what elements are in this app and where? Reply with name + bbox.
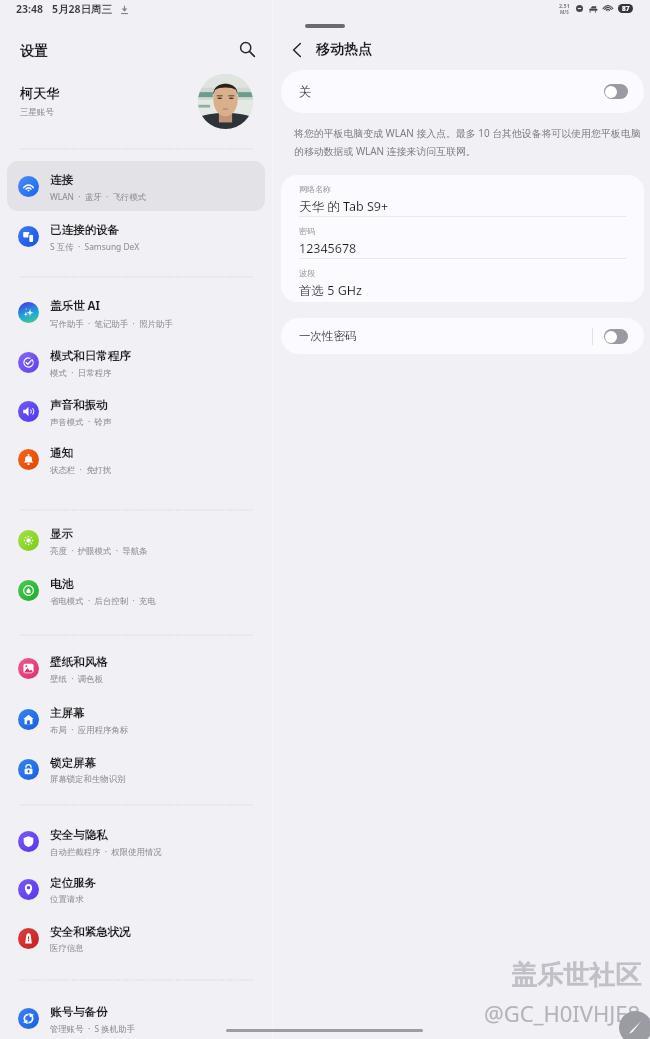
button[interactable]: 通知 xyxy=(7,434,265,484)
staticText: 将您的平板电脑变成 WLAN 接入点。最多 10 台其他设备将可以使用您平板电脑… xyxy=(294,126,641,158)
staticText: 5月28日周三 xyxy=(52,2,113,16)
staticText: 自动拦截程序 · 权限使用情况 xyxy=(50,846,162,857)
button[interactable]: 网络名称 xyxy=(281,175,644,217)
staticText: 87 xyxy=(622,4,630,13)
staticText: 密码 xyxy=(299,226,315,236)
button[interactable]: 安全和紧急状况 xyxy=(7,913,265,963)
button[interactable]: 显示 xyxy=(7,515,265,565)
staticText: 电池 xyxy=(50,577,73,591)
staticText: 23:48 xyxy=(16,2,43,16)
staticText: WLAN · 蓝牙 · 飞行模式 xyxy=(50,191,147,202)
button[interactable]: 声音和振动 xyxy=(7,386,265,436)
staticText: 天华 的 Tab S9+ xyxy=(299,198,389,215)
staticText: 模式和日常程序 xyxy=(50,349,131,363)
button[interactable]: 电池 xyxy=(7,565,265,615)
staticText: 一次性密码 xyxy=(299,329,357,343)
button[interactable]: 一次性密码 xyxy=(281,318,644,354)
staticText: 关 xyxy=(299,84,312,100)
staticText: @GC_H0IVHJE8 xyxy=(484,998,641,1028)
button[interactable]: 盖乐世 AI xyxy=(7,287,265,337)
button[interactable]: Search xyxy=(231,33,264,66)
button[interactable]: 账号与备份 xyxy=(7,993,265,1039)
staticText: 网络名称 xyxy=(299,184,331,194)
staticText: 通知 xyxy=(50,446,73,460)
staticText: 壁纸和风格 xyxy=(50,655,108,669)
button[interactable]: Toggle xyxy=(604,329,628,344)
staticText: 波段 xyxy=(299,268,315,278)
staticText: 布局 · 应用程序角标 xyxy=(50,724,129,735)
staticText: 账号与备份 xyxy=(50,1005,108,1019)
staticText: 安全与隐私 xyxy=(50,828,108,842)
staticText: 位置请求 xyxy=(50,894,84,905)
button[interactable]: Edit xyxy=(619,1011,650,1039)
staticText: S 互传 · Samsung DeX xyxy=(50,241,140,252)
staticText: 显示 xyxy=(50,527,73,541)
staticText: 三星账号 xyxy=(20,107,54,118)
staticText: 定位服务 xyxy=(50,876,96,890)
button[interactable]: 主屏幕 xyxy=(7,694,265,744)
button[interactable]: 柯天华 xyxy=(20,71,253,132)
staticText: 盖乐世社区 xyxy=(511,959,641,992)
staticText: 安全和紧急状况 xyxy=(50,925,131,939)
staticText: 首选 5 GHz xyxy=(299,282,362,299)
button[interactable]: 模式和日常程序 xyxy=(7,337,265,387)
button[interactable]: 密码 xyxy=(281,217,644,259)
staticText: 医疗信息 xyxy=(50,943,84,954)
staticText: M/S xyxy=(560,9,569,15)
button[interactable]: 设置 xyxy=(20,43,48,61)
staticText: 声音和振动 xyxy=(50,398,108,412)
staticText: 壁纸 · 调色板 xyxy=(50,673,103,684)
staticText: 锁定屏幕 xyxy=(50,756,96,770)
staticText: 声音模式 · 铃声 xyxy=(50,416,112,427)
button[interactable]: 连接 xyxy=(7,161,265,211)
staticText: 模式 · 日常程序 xyxy=(50,367,112,378)
staticText: 连接 xyxy=(50,173,73,187)
staticText: 设置 xyxy=(20,43,48,61)
staticText: 屏幕锁定和生物识别 xyxy=(50,774,126,785)
button[interactable]: Toggle xyxy=(604,84,628,99)
button[interactable]: 波段 xyxy=(281,259,644,301)
staticText: 状态栏 · 免打扰 xyxy=(50,464,112,475)
staticText: 2.51 xyxy=(559,2,570,9)
button[interactable]: 已连接的设备 xyxy=(7,211,265,261)
staticText: 亮度 · 护眼模式 · 导航条 xyxy=(50,545,148,556)
staticText: 柯天华 xyxy=(20,85,59,101)
staticText: 主屏幕 xyxy=(50,706,85,720)
button[interactable]: 锁定屏幕 xyxy=(7,744,265,794)
staticText: 移动热点 xyxy=(316,41,372,59)
staticText: 已连接的设备 xyxy=(50,223,119,237)
staticText: 省电模式 · 后台控制 · 充电 xyxy=(50,595,156,606)
staticText: 管理账号 · S 换机助手 xyxy=(50,1023,135,1034)
button[interactable]: 关 xyxy=(281,70,644,113)
staticText: 12345678 xyxy=(299,240,357,257)
button[interactable]: 定位服务 xyxy=(7,864,265,914)
button[interactable]: 壁纸和风格 xyxy=(7,643,265,693)
staticText: 写作助手 · 笔记助手 · 照片助手 xyxy=(50,318,173,329)
button[interactable]: 安全与隐私 xyxy=(7,816,265,866)
button[interactable]: Back xyxy=(282,35,312,65)
staticText: 盖乐世 AI xyxy=(50,298,100,314)
